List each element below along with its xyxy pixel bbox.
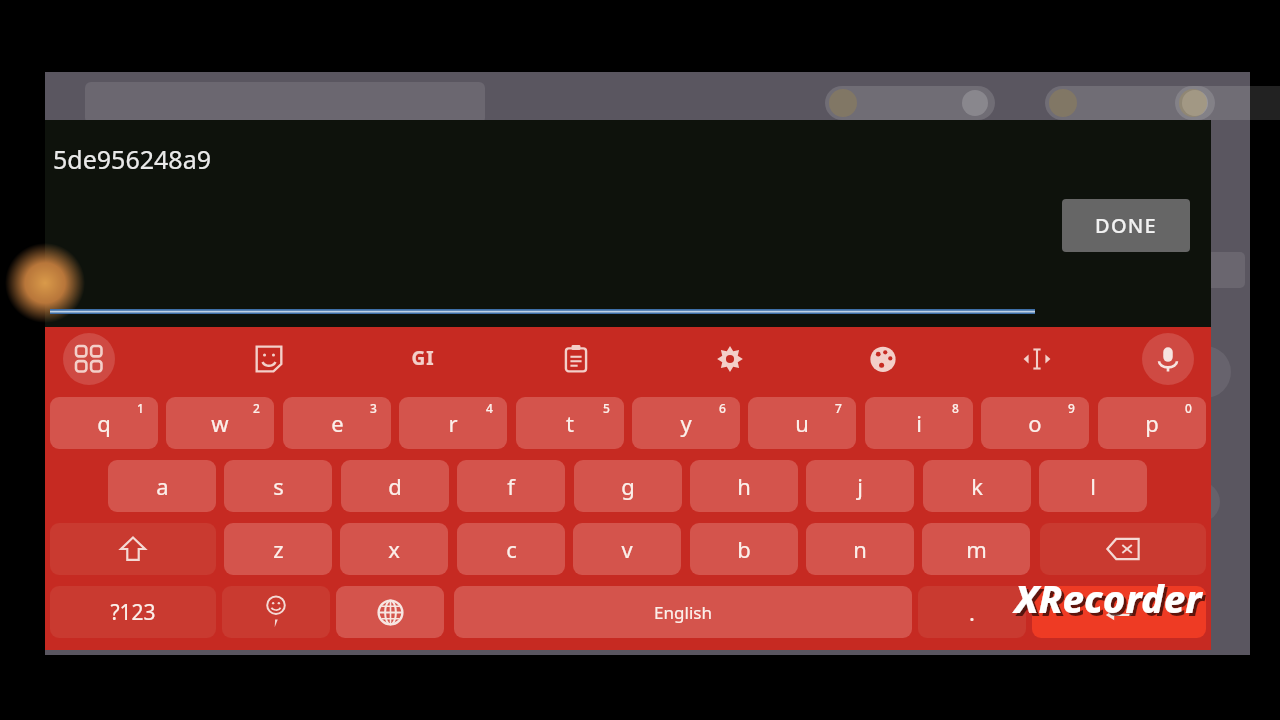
button[interactable]: j xyxy=(806,460,914,512)
staticText: GIF xyxy=(409,345,437,373)
button[interactable]: y xyxy=(632,397,740,449)
staticText: s xyxy=(273,471,284,501)
staticText: 3 xyxy=(370,400,377,416)
button[interactable]: d xyxy=(341,460,449,512)
staticText: i xyxy=(916,408,922,438)
button[interactable]: l xyxy=(1039,460,1147,512)
staticText: English xyxy=(654,601,712,624)
staticText: h xyxy=(737,471,751,501)
staticText: ?123 xyxy=(110,598,156,627)
staticText: l xyxy=(1090,471,1096,501)
button[interactable]: p xyxy=(1098,397,1206,449)
staticText: DONE xyxy=(1095,212,1157,239)
button[interactable]: u xyxy=(748,397,856,449)
button[interactable]: r xyxy=(399,397,507,449)
staticText: f xyxy=(507,471,515,501)
button[interactable]: s xyxy=(224,460,332,512)
staticText: r xyxy=(448,408,458,438)
button[interactable]: Emoji xyxy=(222,586,330,638)
button[interactable]: o xyxy=(981,397,1089,449)
button[interactable]: h xyxy=(690,460,798,512)
staticText: n xyxy=(853,534,867,564)
staticText: 6 xyxy=(719,400,726,416)
button[interactable]: z xyxy=(224,523,332,575)
button[interactable]: w xyxy=(166,397,274,449)
button[interactable]: Enter xyxy=(1032,586,1206,638)
button[interactable]: Stickers xyxy=(243,333,295,385)
staticText: z xyxy=(273,534,284,564)
button[interactable]: Clipboard xyxy=(550,333,602,385)
button[interactable]: Voice input xyxy=(1142,333,1194,385)
staticText: 2 xyxy=(253,400,260,416)
staticText: g xyxy=(621,471,635,501)
staticText: 0 xyxy=(1185,400,1192,416)
button[interactable]: Themes xyxy=(857,333,909,385)
button[interactable]: e xyxy=(283,397,391,449)
staticText: 5de956248a9 xyxy=(53,142,211,176)
staticText: . xyxy=(969,597,975,627)
button[interactable]: Keyboard menu xyxy=(63,333,115,385)
staticText: 7 xyxy=(835,400,842,416)
button[interactable]: k xyxy=(923,460,1031,512)
staticText: 4 xyxy=(486,400,493,416)
staticText: k xyxy=(971,471,983,501)
staticText: u xyxy=(795,408,809,438)
staticText: q xyxy=(97,408,111,438)
button[interactable]: Shift xyxy=(50,523,216,575)
button[interactable]: x xyxy=(340,523,448,575)
staticText: e xyxy=(331,408,344,438)
staticText: m xyxy=(966,534,987,564)
button[interactable]: ?123 xyxy=(50,586,216,638)
button[interactable]: DONE xyxy=(1062,199,1190,252)
staticText: j xyxy=(857,471,863,501)
button[interactable]: n xyxy=(806,523,914,575)
button[interactable]: i xyxy=(865,397,973,449)
staticText: XRecorder xyxy=(1017,575,1205,627)
button[interactable]: a xyxy=(108,460,216,512)
staticText: 9 xyxy=(1068,400,1075,416)
staticText: XRecorder xyxy=(1014,572,1202,624)
button[interactable]: Change language xyxy=(336,586,444,638)
staticText: o xyxy=(1028,408,1042,438)
button[interactable]: Settings xyxy=(704,333,756,385)
staticText: d xyxy=(388,471,402,501)
button[interactable]: q xyxy=(50,397,158,449)
staticText: 1 xyxy=(137,400,144,416)
button[interactable]: Text editing xyxy=(1011,333,1063,385)
staticText: y xyxy=(680,408,692,438)
staticText: 8 xyxy=(952,400,959,416)
button[interactable]: v xyxy=(573,523,681,575)
staticText: p xyxy=(1145,408,1159,438)
button[interactable]: . xyxy=(918,586,1026,638)
staticText: x xyxy=(388,534,400,564)
button[interactable]: GIF xyxy=(397,333,449,385)
button[interactable]: t xyxy=(516,397,624,449)
staticText: a xyxy=(156,471,169,501)
staticText: b xyxy=(737,534,751,564)
button[interactable]: f xyxy=(457,460,565,512)
button[interactable]: m xyxy=(922,523,1030,575)
button[interactable]: c xyxy=(457,523,565,575)
button[interactable]: Backspace xyxy=(1040,523,1206,575)
staticText: w xyxy=(211,408,229,438)
button[interactable]: g xyxy=(574,460,682,512)
staticText: 5 xyxy=(603,400,610,416)
staticText: v xyxy=(621,534,633,564)
button[interactable]: English xyxy=(454,586,912,638)
staticText: c xyxy=(506,534,517,564)
button[interactable]: b xyxy=(690,523,798,575)
staticText: t xyxy=(566,408,574,438)
